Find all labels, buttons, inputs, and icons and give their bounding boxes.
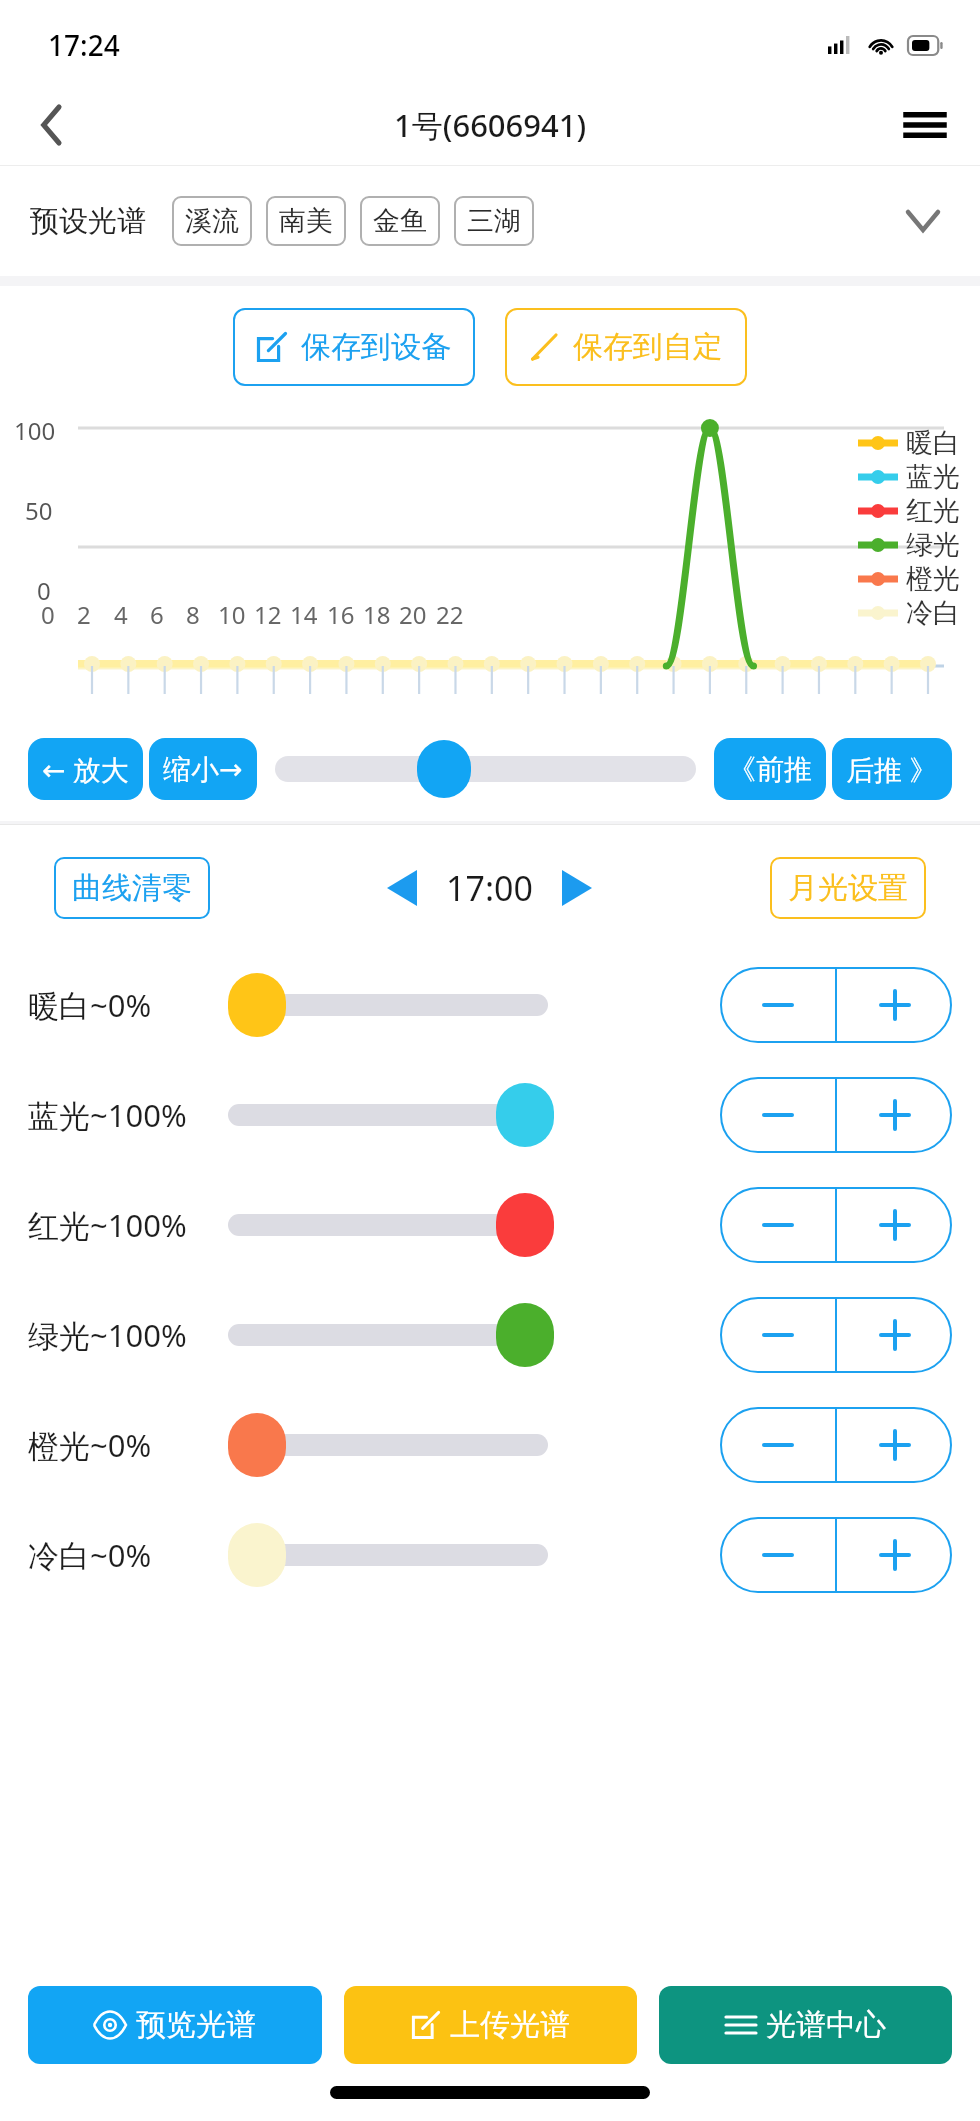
button[interactable]: 三湖 [454,196,534,246]
button[interactable]: 《前推 [714,738,826,800]
button[interactable]: Decrease 暖白~0% [720,967,835,1043]
button[interactable]: Decrease 蓝光~100% [720,1077,835,1153]
staticText: 暖白 [906,426,960,460]
staticText: 预览光谱 [136,2006,256,2044]
button[interactable]: 溪流 [172,196,252,246]
staticText: 冷白~0% [28,1534,152,1576]
button[interactable] [228,1080,548,1150]
staticText: 保存到自定 [573,328,723,366]
staticText: 保存到设备 [301,328,451,366]
staticText: 暖白~0% [28,984,152,1026]
button[interactable] [228,1410,548,1480]
button[interactable]: 曲线清零 [54,857,210,919]
staticText: 17:00 [446,865,533,911]
staticText: 三湖 [467,204,521,238]
staticText: 南美 [279,204,333,238]
button[interactable]: Previous hour [374,860,430,916]
button[interactable]: Decrease 冷白~0% [720,1517,835,1593]
staticText: 17:24 [48,26,120,64]
staticText: 16 [327,598,355,631]
button[interactable]: Increase 绿光~100% [837,1297,952,1373]
button[interactable]: 上传光谱 [344,1986,637,2064]
staticText: 曲线清零 [72,869,192,907]
button[interactable]: 光谱中心 [659,1986,952,2064]
staticText: 冷白 [906,596,960,630]
staticText: 缩小→ [163,752,243,787]
staticText: 金鱼 [373,204,427,238]
staticText: 光谱中心 [766,2006,886,2044]
staticText: 1号(6606941) [394,104,587,146]
staticText: 50 [25,494,53,527]
staticText: 6 [150,598,164,631]
staticText: ← 放大 [42,750,129,788]
staticText: 12 [254,598,282,631]
staticText: 4 [114,598,128,631]
staticText: 100 [14,414,56,447]
button[interactable]: Increase 冷白~0% [837,1517,952,1593]
staticText: 蓝光~100% [28,1094,187,1136]
button[interactable]: ← 放大 [28,738,143,800]
button[interactable] [228,1300,548,1370]
button[interactable]: Timeline position [417,740,471,798]
staticText: 绿光 [906,528,960,562]
button[interactable]: Next hour [549,860,605,916]
button[interactable]: 保存到自定 [505,308,747,386]
staticText: 后推 》 [846,750,938,788]
button[interactable]: Expand [896,194,950,248]
button[interactable]: Increase 橙光~0% [837,1407,952,1483]
staticText: 8 [186,598,200,631]
button[interactable]: Decrease 红光~100% [720,1187,835,1263]
button[interactable]: 金鱼 [360,196,440,246]
staticText: 2 [77,598,91,631]
button[interactable] [228,970,548,1040]
staticText: 《前推 [728,752,812,787]
staticText: 上传光谱 [450,2006,570,2044]
button[interactable]: 月光设置 [770,857,926,919]
button[interactable]: Increase 蓝光~100% [837,1077,952,1153]
staticText: 22 [436,598,464,631]
button[interactable] [228,1520,548,1590]
staticText: 月光设置 [788,869,908,907]
button[interactable]: Increase 暖白~0% [837,967,952,1043]
staticText: 18 [363,598,391,631]
staticText: 红光~100% [28,1204,187,1246]
staticText: 蓝光 [906,460,960,494]
staticText: 溪流 [185,204,239,238]
button[interactable]: 保存到设备 [233,308,475,386]
staticText: 橙光 [906,562,960,596]
button[interactable]: Decrease 绿光~100% [720,1297,835,1373]
button[interactable]: Decrease 橙光~0% [720,1407,835,1483]
staticText: 20 [399,598,427,631]
staticText: 0 [41,598,55,631]
staticText: 红光 [906,494,960,528]
staticText: 绿光~100% [28,1314,187,1356]
button[interactable]: 后推 》 [832,738,952,800]
button[interactable]: Menu [894,94,956,156]
button[interactable]: 南美 [266,196,346,246]
button[interactable]: Increase 红光~100% [837,1187,952,1263]
staticText: 橙光~0% [28,1424,152,1466]
button[interactable] [228,1190,548,1260]
staticText: 10 [218,598,246,631]
button[interactable]: Back [22,95,82,155]
staticText: 0 [37,574,51,607]
button[interactable]: 预览光谱 [28,1986,322,2064]
button[interactable]: 缩小→ [149,738,257,800]
staticText: 预设光谱 [30,203,146,240]
staticText: 14 [290,598,318,631]
